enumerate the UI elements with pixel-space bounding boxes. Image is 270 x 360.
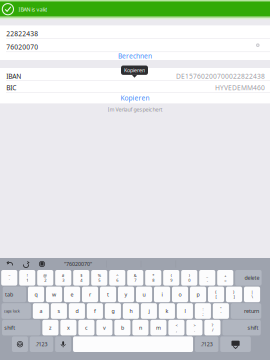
button[interactable]: h (123, 303, 139, 319)
button[interactable]: f (87, 303, 103, 319)
button[interactable]: ( (163, 270, 179, 286)
button[interactable]: g (105, 303, 121, 319)
staticText: h (129, 307, 132, 315)
button[interactable]: | (244, 287, 260, 302)
button[interactable]: tab (3, 287, 26, 302)
button[interactable] (55, 336, 71, 352)
button[interactable]: ! (19, 270, 35, 286)
button[interactable]: caps lock (1, 303, 31, 319)
button[interactable]: + (217, 270, 233, 286)
staticText: s (57, 307, 60, 315)
button[interactable]: Paste (34, 258, 50, 269)
button[interactable]: $ (73, 270, 89, 286)
staticText: 6 (116, 277, 118, 283)
button[interactable]: n (132, 320, 148, 335)
button[interactable] (12, 336, 28, 352)
staticText: m (156, 324, 161, 331)
button[interactable]: Kopieren (0, 92, 270, 103)
button[interactable]: ? (204, 320, 220, 335)
staticText: ! (27, 273, 28, 278)
staticText: . (194, 327, 195, 333)
button[interactable]: s (51, 303, 67, 319)
staticText: j (148, 307, 149, 315)
button[interactable]: m (150, 320, 166, 335)
staticText: r (89, 291, 91, 298)
button[interactable]: > (186, 320, 202, 335)
staticText: ` (9, 277, 10, 283)
button[interactable]: o (172, 287, 188, 302)
button[interactable]: c (78, 320, 94, 335)
button[interactable]: return (231, 303, 261, 319)
button[interactable]: } (226, 287, 242, 302)
staticText: .?123 (35, 341, 47, 348)
button[interactable]: { (208, 287, 224, 302)
button[interactable]: _ (199, 270, 215, 286)
staticText: 8 (152, 277, 154, 283)
button[interactable]: .?123 (30, 336, 53, 352)
button[interactable]: d (69, 303, 85, 319)
staticText: 9 (170, 277, 172, 283)
staticText: 2 (44, 277, 46, 283)
button[interactable]: j (141, 303, 157, 319)
staticText: < (175, 323, 177, 328)
button[interactable] (220, 336, 251, 352)
button[interactable]: w (46, 287, 62, 302)
staticText: shift (248, 324, 259, 331)
staticText: return (244, 307, 259, 315)
button[interactable]: @ (37, 270, 53, 286)
staticText: \ (252, 294, 253, 299)
button[interactable]: t (100, 287, 116, 302)
staticText: n (139, 324, 142, 331)
button[interactable] (73, 336, 193, 352)
button[interactable]: q (28, 287, 44, 302)
button[interactable]: " (213, 303, 229, 319)
button[interactable]: b (114, 320, 130, 335)
button[interactable]: ^ (109, 270, 125, 286)
staticText: k (165, 307, 168, 315)
button[interactable]: Redo (18, 258, 34, 269)
staticText: delete (244, 274, 259, 281)
button[interactable]: delete (235, 270, 262, 286)
button[interactable]: Berechnen (0, 52, 270, 60)
button[interactable]: shift (2, 320, 40, 335)
button[interactable]: # (55, 270, 71, 286)
button[interactable]: y (118, 287, 134, 302)
button[interactable]: z (42, 320, 58, 335)
button[interactable]: i (154, 287, 170, 302)
button[interactable]: r (82, 287, 98, 302)
button[interactable]: v (96, 320, 112, 335)
staticText: 7 (134, 277, 136, 283)
button[interactable]: e (64, 287, 80, 302)
button[interactable]: * (145, 270, 161, 286)
button[interactable]: shift (222, 320, 261, 335)
staticText: ) (189, 273, 190, 278)
staticText: IBAN (6, 72, 21, 81)
staticText: 0 (188, 277, 190, 283)
staticText: 1 (26, 277, 28, 283)
button[interactable]: a (33, 303, 49, 319)
button[interactable]: < (168, 320, 184, 335)
staticText: ' (220, 311, 221, 316)
staticText: IBAN is valid (18, 6, 47, 13)
button[interactable]: u (136, 287, 152, 302)
button[interactable]: ~ (1, 270, 17, 286)
button[interactable]: l (177, 303, 193, 319)
staticText: 76020070 (6, 42, 38, 51)
staticText: } (233, 289, 235, 295)
button[interactable]: x (60, 320, 76, 335)
button[interactable]: p (190, 287, 206, 302)
button[interactable]: Undo (2, 258, 18, 269)
button[interactable]: "76020070" (50, 258, 106, 269)
button[interactable]: k (159, 303, 175, 319)
staticText: .?123 (201, 341, 213, 348)
staticText: w (52, 291, 56, 298)
staticText: ? (211, 323, 213, 328)
button[interactable]: : (195, 303, 211, 319)
staticText: ^ (116, 273, 118, 278)
staticText: g (111, 307, 114, 315)
button[interactable]: .?123 (195, 336, 218, 352)
button[interactable]: % (91, 270, 107, 286)
button[interactable]: ) (181, 270, 197, 286)
button[interactable]: & (127, 270, 143, 286)
staticText: # (62, 273, 65, 278)
